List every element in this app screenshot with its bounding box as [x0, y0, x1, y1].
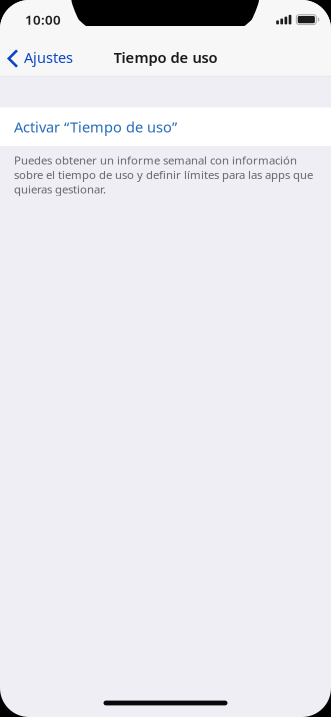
button[interactable]: Ajustes [0, 38, 94, 76]
staticText: Ajustes [24, 47, 73, 67]
staticText: sobre el tiempo de uso y definir límites… [14, 167, 313, 182]
staticText: quieras gestionar. [14, 181, 106, 197]
staticText: Puedes obtener un informe semanal con in… [14, 152, 297, 168]
staticText: Tiempo de uso [113, 47, 217, 67]
staticText: Activar “Tiempo de uso” [14, 117, 177, 137]
staticText: 10:00 [25, 10, 61, 29]
button[interactable]: Activar “Tiempo de uso” [0, 107, 331, 146]
